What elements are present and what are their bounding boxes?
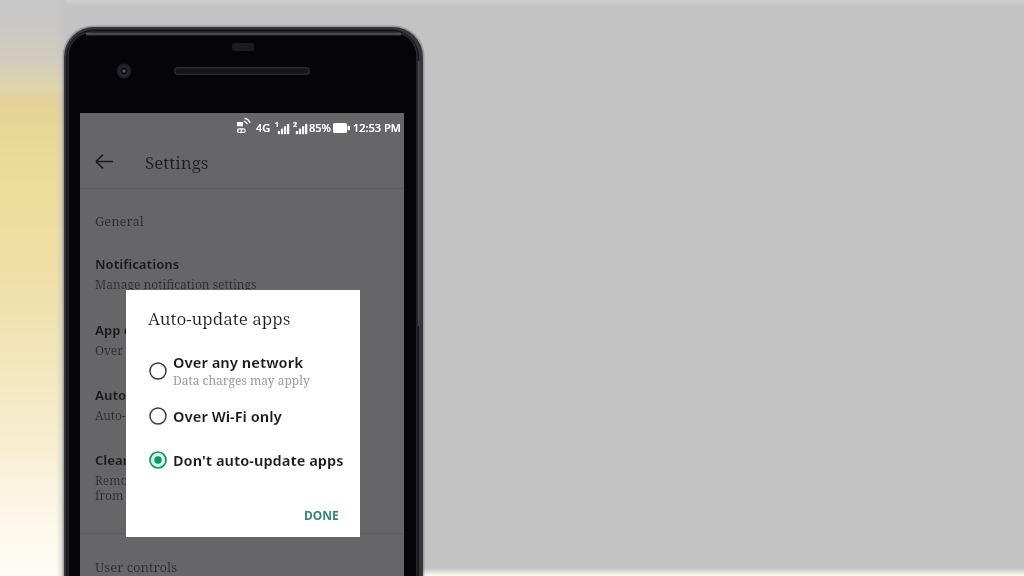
staticText: General xyxy=(95,212,144,230)
staticText: 1 xyxy=(275,120,280,130)
button[interactable]: Clear cache xyxy=(80,437,404,502)
staticText: 85% xyxy=(309,120,331,135)
staticText: Don't auto-update apps xyxy=(173,450,344,470)
staticText: Notifications xyxy=(95,255,180,273)
button[interactable]: Over Wi-Fi only xyxy=(126,406,360,426)
staticText: 12:53 PM xyxy=(353,120,401,135)
button[interactable]: Don't auto-update apps xyxy=(126,450,360,470)
staticText: 2 xyxy=(293,120,298,130)
staticText: Auto-update apps xyxy=(148,307,291,330)
staticText: Settings xyxy=(145,151,209,174)
staticText: Over any network xyxy=(173,352,304,372)
button[interactable]: Over any network xyxy=(126,352,360,388)
staticText: Remove temporary files from this device xyxy=(95,472,232,502)
button[interactable]: DONE xyxy=(298,501,345,529)
button[interactable]: Auto-update apps xyxy=(80,372,404,437)
staticText: DONE xyxy=(304,507,339,523)
staticText: Data charges may apply xyxy=(173,372,310,388)
staticText: Clear cache xyxy=(95,451,170,469)
staticText: Manage notification settings xyxy=(95,276,257,292)
staticText: Auto-update apps over any network xyxy=(95,407,301,423)
staticText: App downloads xyxy=(95,321,194,339)
button[interactable]: Back xyxy=(85,142,123,180)
button[interactable]: Notifications xyxy=(80,241,404,306)
staticText: 4G xyxy=(256,120,271,135)
staticText: Over Wi-Fi only xyxy=(173,406,282,426)
button[interactable]: App downloads xyxy=(80,307,404,372)
staticText: Over any network xyxy=(95,342,199,358)
staticText: Auto-update apps xyxy=(95,386,211,404)
staticText: User controls xyxy=(95,558,178,576)
